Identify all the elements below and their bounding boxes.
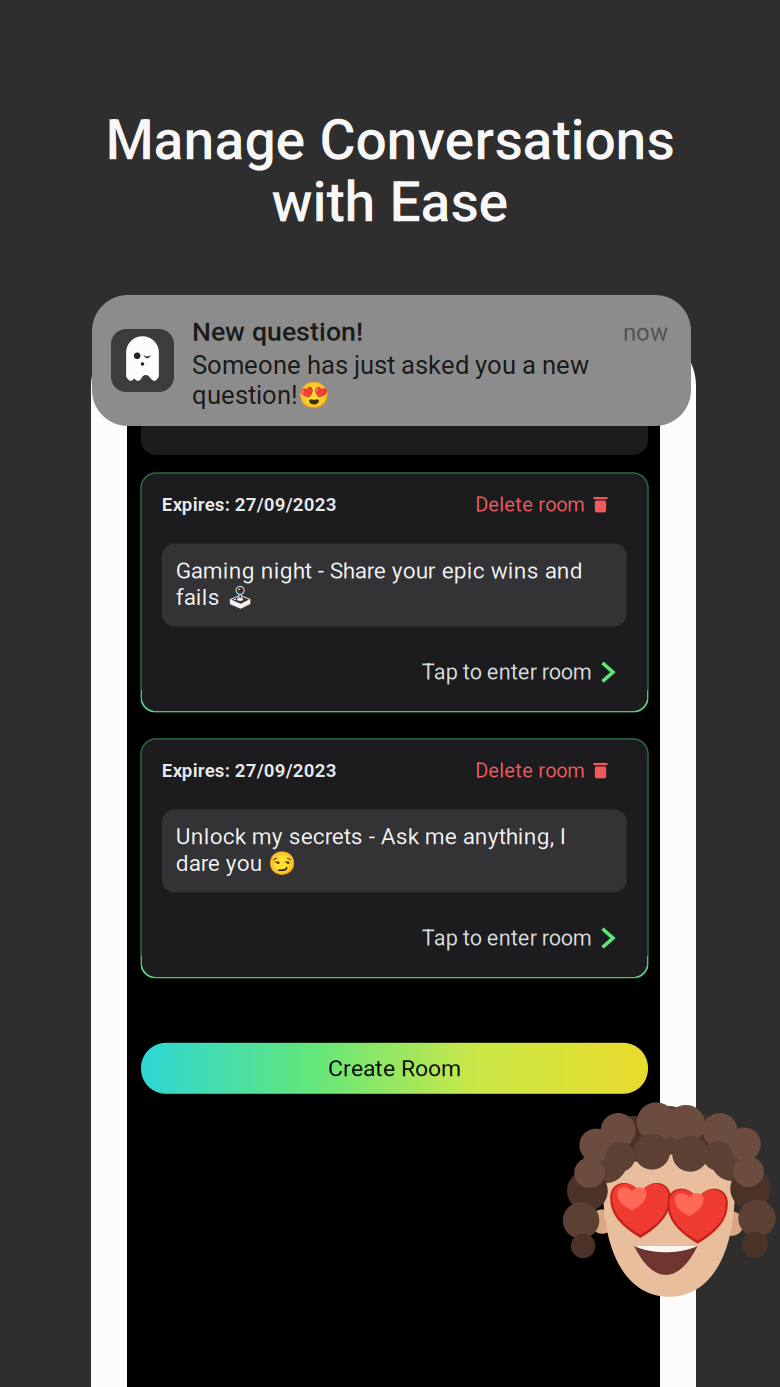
button[interactable]: Create Room <box>141 1043 648 1094</box>
staticText: Create Room <box>328 1055 461 1082</box>
button[interactable]: Expires: 27/09/2023 <box>141 739 648 978</box>
staticText: Delete room <box>475 759 585 782</box>
staticText: Gaming night - Share your epic wins and … <box>176 557 583 610</box>
staticText: New question! <box>192 316 363 347</box>
staticText: Delete room <box>475 493 585 516</box>
staticText: now <box>623 318 668 347</box>
staticText: Someone has just asked you a new questio… <box>192 350 589 410</box>
button[interactable]: Expires: 27/09/2023 <box>141 473 648 712</box>
staticText: Tap to enter room <box>422 925 592 951</box>
staticText: Unlock my secrets - Ask me anything, I d… <box>176 823 566 876</box>
staticText: Manage Conversations <box>105 108 674 173</box>
staticText: Expires: 27/09/2023 <box>162 494 337 516</box>
staticText: Expires: 27/09/2023 <box>162 760 337 782</box>
staticText: with Ease <box>271 170 508 235</box>
staticText: Tap to enter room <box>422 659 592 685</box>
